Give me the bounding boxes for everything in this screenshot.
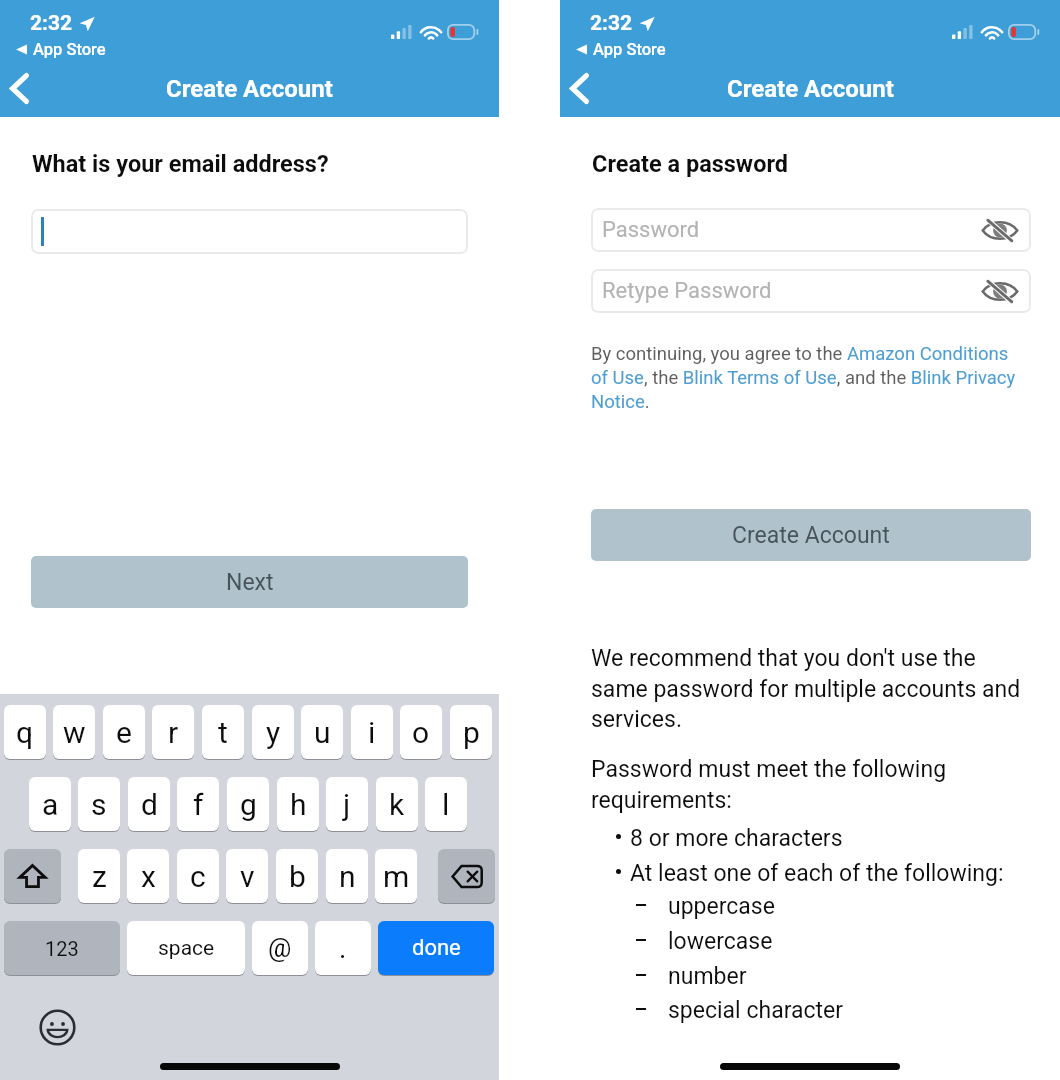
- button[interactable]: t: [202, 705, 244, 759]
- button[interactable]: s: [78, 777, 120, 831]
- button[interactable]: Show Password: [978, 208, 1022, 252]
- staticText: Next: [226, 569, 274, 596]
- staticText: k: [389, 787, 405, 822]
- button[interactable]: @: [252, 921, 308, 975]
- staticText: Create a password: [592, 150, 789, 178]
- button[interactable]: n: [326, 849, 368, 903]
- staticText: s: [91, 787, 107, 822]
- staticText: d: [141, 787, 158, 822]
- staticText: m: [383, 859, 410, 894]
- staticText: f: [193, 787, 204, 822]
- button[interactable]: b: [276, 849, 318, 903]
- button[interactable]: a: [29, 777, 71, 831]
- staticText: t: [218, 715, 228, 750]
- staticText: x: [141, 859, 156, 894]
- button[interactable]: Backspace: [438, 849, 495, 903]
- staticText: space: [158, 936, 215, 961]
- staticText: n: [339, 859, 356, 894]
- staticText: At least one of each of the following:: [630, 860, 1004, 887]
- staticText: number: [668, 963, 747, 990]
- staticText: Password must meet the following require…: [591, 756, 991, 813]
- staticText: h: [290, 787, 307, 822]
- button[interactable]: [31, 209, 468, 254]
- button[interactable]: y: [252, 705, 294, 759]
- staticText: r: [168, 715, 179, 750]
- staticText: o: [412, 715, 430, 750]
- staticText: special character: [668, 997, 844, 1024]
- button[interactable]: done: [378, 921, 494, 975]
- staticText: l: [442, 787, 450, 822]
- button[interactable]: r: [152, 705, 194, 759]
- staticText: What is your email address?: [32, 150, 329, 178]
- button[interactable]: Create Account: [591, 509, 1031, 561]
- staticText: c: [190, 859, 206, 894]
- staticText: done: [412, 935, 461, 961]
- staticText: 8 or more characters: [630, 825, 843, 852]
- button[interactable]: Password: [591, 208, 1031, 252]
- staticText: q: [16, 715, 34, 750]
- button[interactable]: Show Retype Password: [978, 269, 1022, 313]
- staticText: p: [463, 715, 480, 750]
- button[interactable]: u: [301, 705, 343, 759]
- staticText: 2:32: [590, 11, 633, 36]
- button[interactable]: .: [315, 921, 371, 975]
- staticText: y: [266, 715, 281, 750]
- staticText: Create Account: [727, 75, 894, 103]
- button[interactable]: 123: [4, 921, 120, 975]
- staticText: App Store: [33, 40, 106, 59]
- staticText: j: [343, 787, 351, 822]
- button[interactable]: o: [400, 705, 442, 759]
- staticText: 2:32: [30, 11, 73, 36]
- staticText: e: [116, 715, 132, 750]
- button[interactable]: Back: [0, 60, 39, 117]
- button[interactable]: c: [177, 849, 219, 903]
- button[interactable]: Next: [31, 556, 468, 608]
- button[interactable]: q: [4, 705, 46, 759]
- staticText: b: [289, 859, 306, 894]
- staticText: w: [63, 715, 86, 750]
- button[interactable]: k: [376, 777, 418, 831]
- staticText: By continuing, you agree to the Amazon C…: [591, 343, 1023, 413]
- staticText: Password: [602, 217, 700, 243]
- staticText: v: [240, 859, 255, 894]
- staticText: Create Account: [732, 522, 890, 549]
- button[interactable]: j: [326, 777, 368, 831]
- button[interactable]: Shift: [4, 849, 61, 903]
- staticText: .: [339, 932, 347, 965]
- button[interactable]: d: [128, 777, 170, 831]
- button[interactable]: Retype Password: [591, 269, 1031, 313]
- button[interactable]: z: [78, 849, 120, 903]
- staticText: g: [240, 787, 257, 822]
- staticText: @: [268, 933, 292, 963]
- button[interactable]: w: [53, 705, 95, 759]
- button[interactable]: v: [226, 849, 268, 903]
- staticText: Retype Password: [602, 278, 772, 304]
- staticText: lowercase: [668, 928, 773, 955]
- button[interactable]: f: [177, 777, 219, 831]
- staticText: uppercase: [668, 893, 775, 920]
- button[interactable]: m: [375, 849, 417, 903]
- staticText: u: [314, 715, 331, 750]
- button[interactable]: space: [127, 921, 245, 975]
- staticText: We recommend that you don't use the same…: [591, 645, 1028, 732]
- button[interactable]: p: [450, 705, 492, 759]
- staticText: z: [92, 859, 107, 894]
- button[interactable]: g: [227, 777, 269, 831]
- button[interactable]: Emoji keyboard: [37, 1007, 77, 1047]
- button[interactable]: Back: [560, 60, 599, 117]
- staticText: 123: [45, 937, 79, 960]
- button[interactable]: e: [103, 705, 145, 759]
- staticText: i: [368, 715, 376, 750]
- button[interactable]: h: [277, 777, 319, 831]
- button[interactable]: i: [351, 705, 393, 759]
- button[interactable]: x: [127, 849, 169, 903]
- staticText: Create Account: [166, 75, 333, 103]
- button[interactable]: l: [425, 777, 467, 831]
- staticText: a: [42, 787, 59, 822]
- staticText: App Store: [593, 40, 666, 59]
